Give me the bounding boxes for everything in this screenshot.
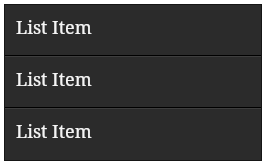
staticText: List Item (16, 67, 92, 92)
staticText: List Item (16, 119, 92, 144)
button[interactable]: List Item (4, 4, 262, 56)
button[interactable]: List Item (4, 56, 262, 108)
staticText: List Item (16, 15, 92, 40)
button[interactable]: List Item (4, 108, 262, 160)
